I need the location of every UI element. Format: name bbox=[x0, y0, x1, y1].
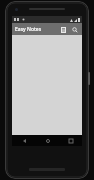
button[interactable]: New note bbox=[59, 25, 68, 34]
button[interactable]: Recent apps bbox=[59, 135, 82, 146]
button[interactable]: Home bbox=[36, 135, 59, 146]
staticText: Easy Notes bbox=[15, 26, 59, 33]
button[interactable]: Back bbox=[12, 135, 36, 146]
button[interactable]: Search bbox=[70, 25, 79, 34]
